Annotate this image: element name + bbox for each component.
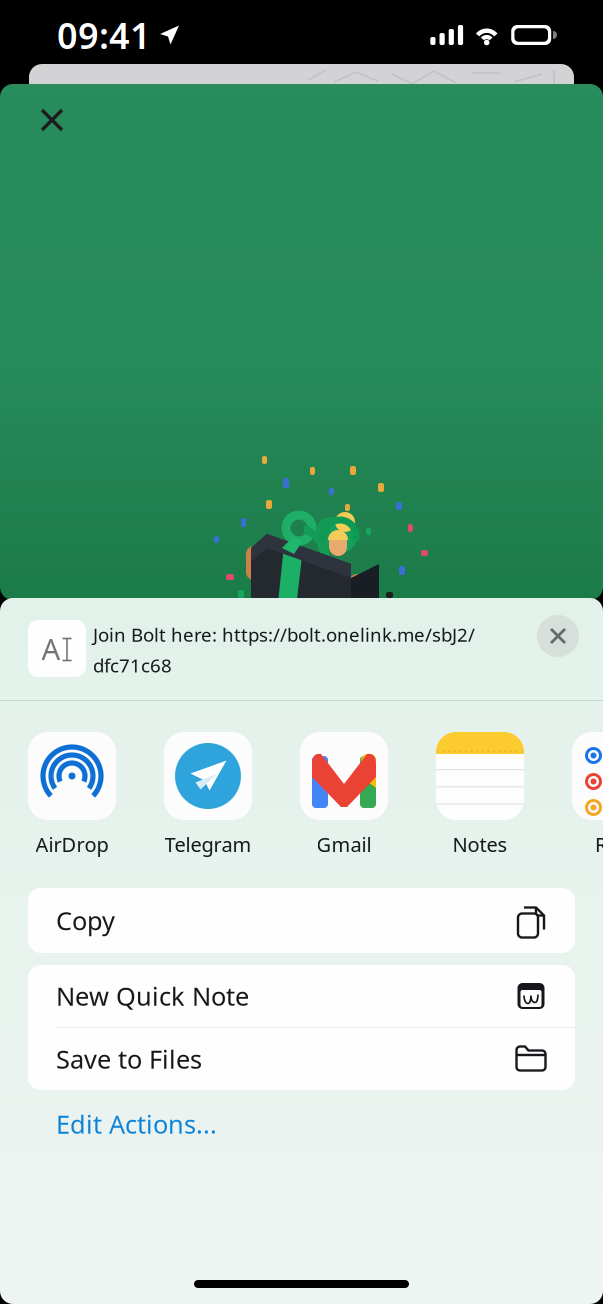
staticText: Join Bolt here: https://bolt.onelink.me/… bbox=[93, 622, 475, 647]
staticText: 09:41 bbox=[57, 11, 151, 59]
button[interactable]: Rem bbox=[572, 732, 603, 858]
staticText: dfc71c68 bbox=[93, 653, 172, 678]
staticText: A bbox=[41, 629, 60, 668]
staticText: AirDrop bbox=[35, 831, 108, 858]
button[interactable]: Close share sheet bbox=[537, 615, 579, 657]
button[interactable]: Gmail bbox=[300, 732, 388, 858]
staticText: Telegram bbox=[164, 831, 251, 858]
button[interactable]: Close bbox=[21, 89, 83, 151]
staticText: Copy bbox=[56, 904, 115, 937]
staticText: Edit Actions... bbox=[56, 1107, 217, 1141]
button[interactable]: Edit Actions... bbox=[28, 1102, 575, 1146]
button[interactable]: Telegram bbox=[164, 732, 252, 858]
button[interactable]: Notes bbox=[436, 732, 524, 858]
staticText: Gmail bbox=[316, 831, 371, 858]
staticText: Notes bbox=[452, 831, 507, 858]
staticText: Rem bbox=[595, 831, 603, 858]
button[interactable]: AirDrop bbox=[28, 732, 116, 858]
button[interactable]: Save to Files bbox=[28, 1028, 575, 1090]
staticText: New Quick Note bbox=[56, 979, 249, 1013]
staticText: Save to Files bbox=[56, 1042, 202, 1076]
button[interactable]: Copy bbox=[28, 888, 575, 953]
button[interactable]: New Quick Note bbox=[28, 965, 575, 1027]
